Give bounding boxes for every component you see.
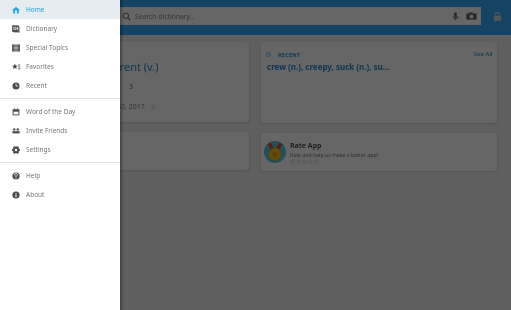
button[interactable]: Recent (0, 76, 120, 95)
staticText: Home (26, 5, 45, 14)
staticText: RECENT (278, 51, 301, 58)
button[interactable]: Account (488, 7, 506, 25)
staticText: Search dictionary.. (135, 12, 194, 21)
button[interactable]: Dictionary (0, 19, 120, 38)
button[interactable]: RECENT (261, 42, 497, 123)
staticText: crew (n.), creepy, suck (n.), su... (267, 61, 390, 72)
staticText: Special Topics (26, 43, 69, 52)
button[interactable]: About (0, 185, 120, 204)
staticText: Invite Friends (26, 126, 68, 135)
staticText: Favorites (26, 62, 54, 71)
button[interactable]: Search dictionary.. (117, 7, 481, 25)
button[interactable]: Voice search (449, 10, 462, 23)
staticText: Settings (26, 145, 51, 154)
staticText: Jan 30, 2017 (105, 102, 145, 112)
staticText: Dictionary (26, 24, 58, 33)
button[interactable]: Settings (0, 140, 120, 159)
staticText: See All (474, 50, 493, 58)
button[interactable]: Home (0, 0, 120, 19)
staticText: Help (26, 171, 41, 180)
button[interactable]: Invite Friends (0, 121, 120, 140)
button[interactable]: current (v.) (13, 42, 249, 122)
staticText: 3 (129, 82, 134, 92)
button[interactable]: Rate App (261, 133, 497, 171)
button[interactable]: Camera search (465, 10, 478, 23)
button[interactable]: Special Topics (0, 38, 120, 57)
staticText: Rate App (290, 141, 322, 151)
staticText: current (v.) (103, 59, 159, 74)
button[interactable]: Word of the Day (0, 102, 120, 121)
staticText: About (26, 190, 45, 199)
button[interactable]: Favorites (0, 57, 120, 76)
button[interactable]: See All (474, 50, 493, 58)
button[interactable] (13, 132, 249, 170)
staticText: Rate and help us make a better app! (290, 151, 379, 158)
button[interactable]: Help (0, 166, 120, 185)
staticText: Recent (26, 81, 47, 90)
staticText: Word of the Day (26, 107, 76, 116)
